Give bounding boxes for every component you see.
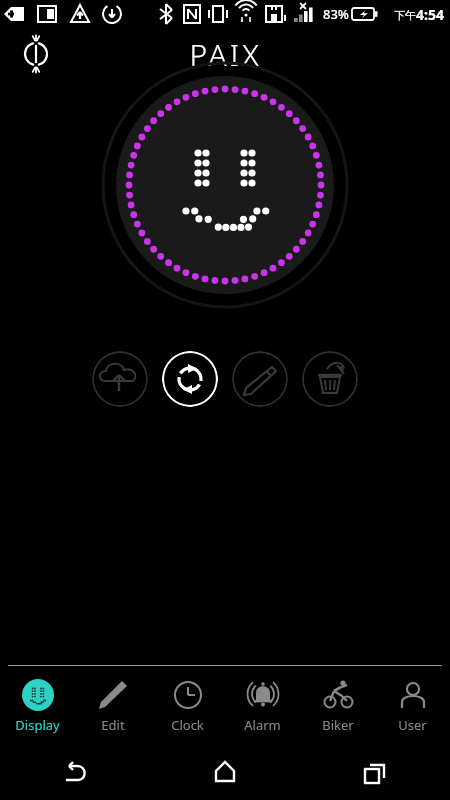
staticText: 下午 [394, 8, 416, 22]
staticText: Display [15, 716, 60, 734]
staticText: 4:54 [416, 5, 444, 24]
button[interactable]: Biker [300, 666, 375, 745]
staticText: Alarm [244, 716, 281, 734]
button[interactable]: Home [150, 745, 300, 800]
button[interactable]: Alarm [225, 666, 300, 745]
button[interactable]: User [375, 666, 450, 745]
button[interactable]: Edit [232, 351, 288, 407]
button[interactable]: Edit [75, 666, 150, 745]
button[interactable]: Sync [162, 351, 218, 407]
staticText: 83% [323, 5, 349, 23]
button[interactable]: Upload to cloud [92, 351, 148, 407]
staticText: User [398, 716, 427, 734]
button[interactable]: Recent apps [300, 745, 450, 800]
button[interactable]: Connection status [14, 32, 58, 76]
staticText: Clock [171, 716, 204, 734]
button[interactable]: Display [0, 666, 75, 745]
button[interactable]: Back [0, 745, 150, 800]
staticText: PAIX [189, 34, 262, 75]
staticText: Biker [322, 716, 354, 734]
button[interactable]: Clock [150, 666, 225, 745]
staticText: Edit [101, 716, 125, 734]
button[interactable]: Delete [302, 351, 358, 407]
